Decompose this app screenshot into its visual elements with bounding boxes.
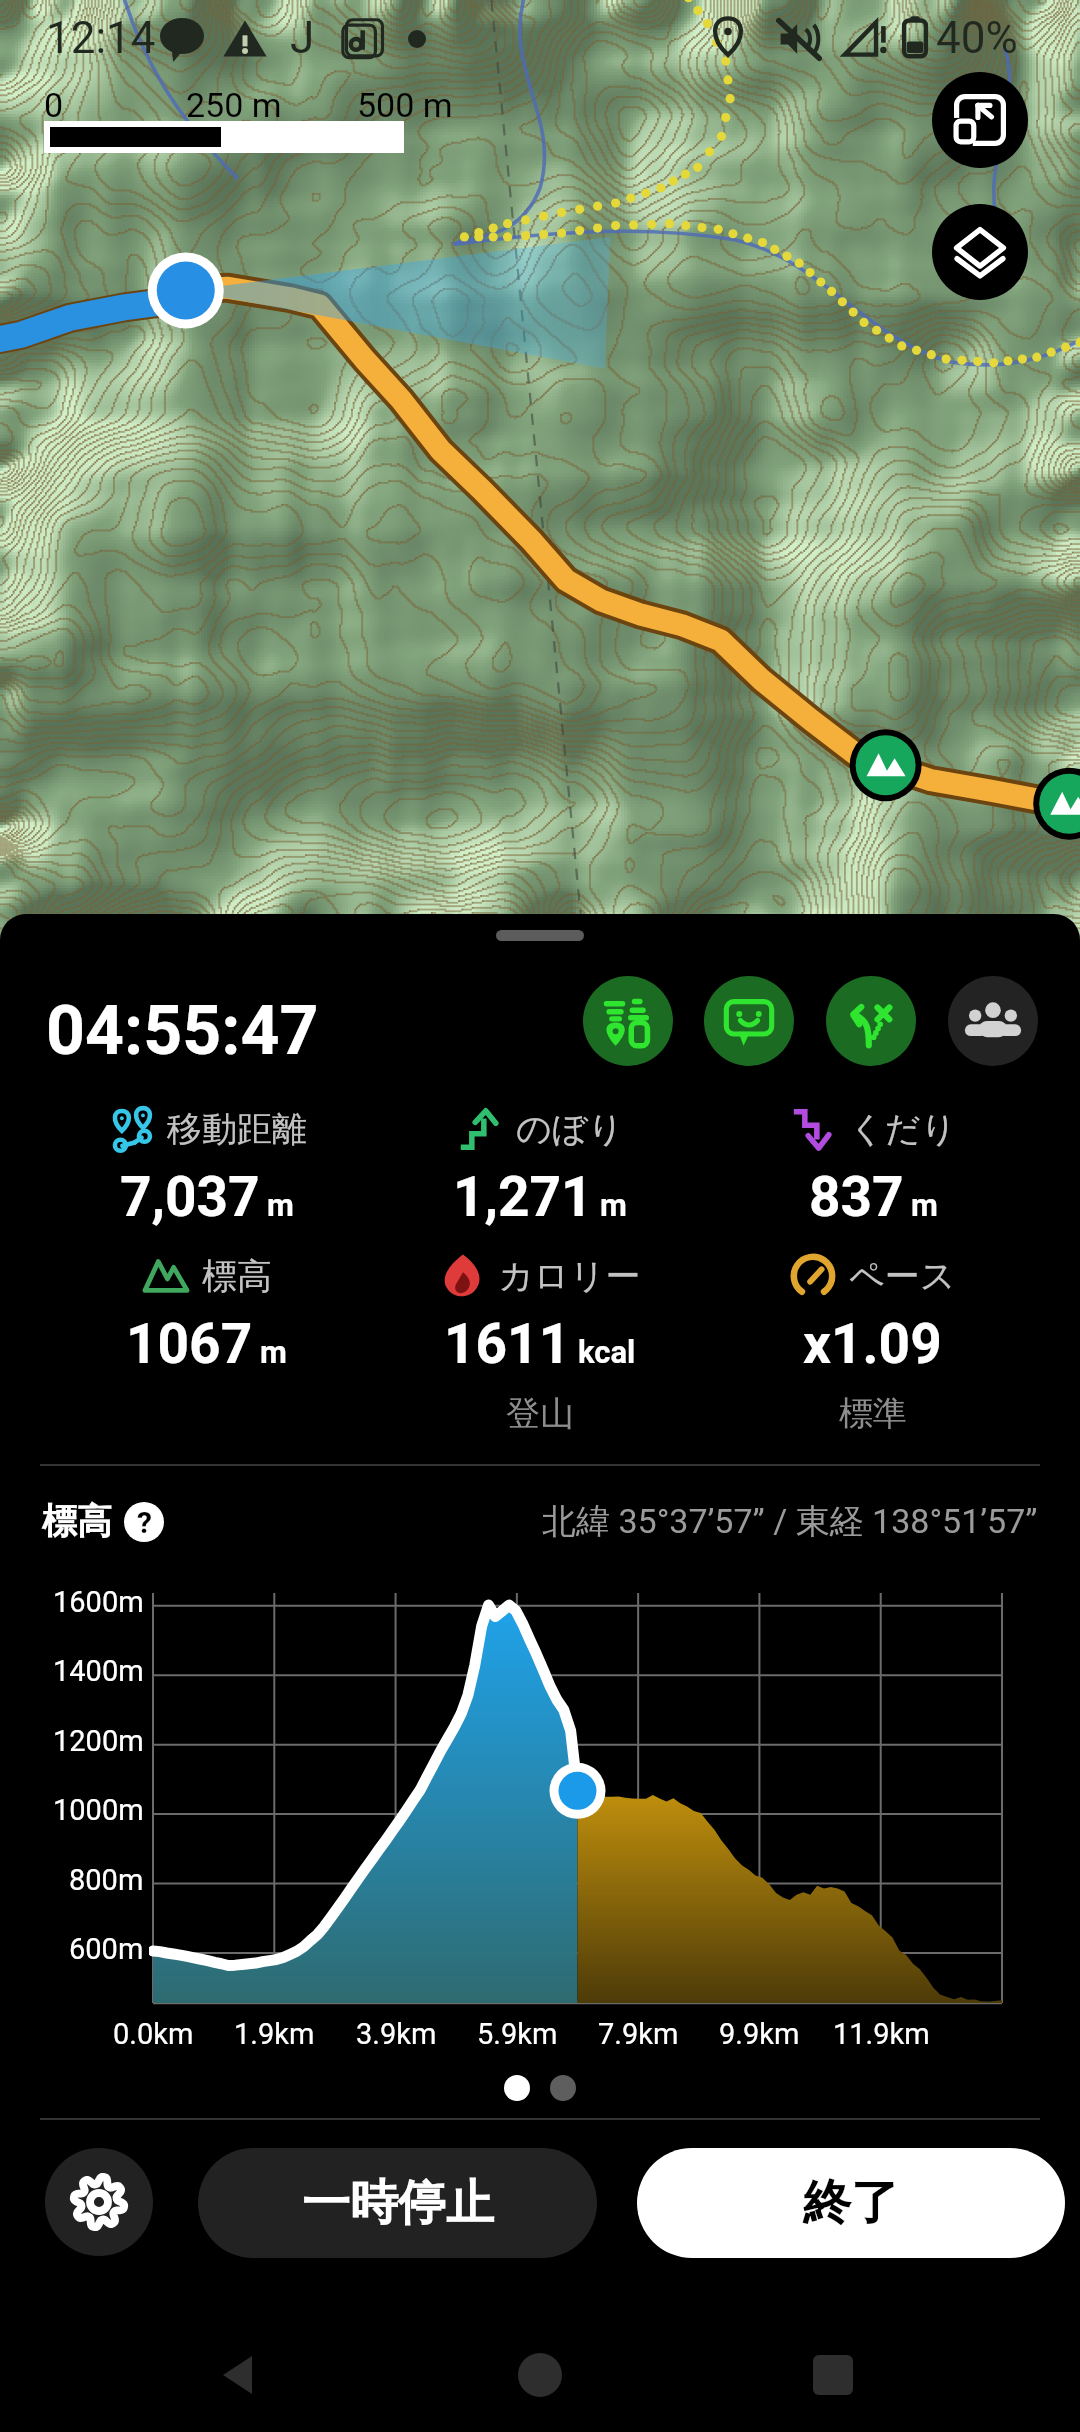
staticText: 標高 [202,1254,272,1298]
staticText: くだり [849,1107,957,1151]
staticText: 登山 [506,1392,574,1435]
button[interactable]: Back [195,2330,285,2420]
staticText: 北緯 35°37’57” / 東経 138°51’57” [542,1500,1038,1543]
staticText: 1400m [53,1654,144,1688]
staticText: 12:14 [46,12,156,64]
staticText: J [290,12,315,64]
button[interactable]: Home [495,2330,585,2420]
button[interactable]: Route [826,976,916,1066]
staticText: 9.9km [719,2017,800,2051]
staticText: 1,271 [453,1165,593,1229]
staticText: 一時停止 [302,2173,494,2233]
staticText: m [600,1187,627,1223]
staticText: m [260,1334,287,1370]
staticText: 5.9km [477,2017,558,2051]
staticText: 1.9km [234,2017,315,2051]
staticText: 600m [69,1932,144,1966]
staticText: 0.0km [113,2017,194,2051]
button[interactable]: Settings [45,2148,153,2256]
staticText: 1000m [53,1793,144,1827]
button[interactable]: Waypoints [583,976,673,1066]
staticText: x1.09 [803,1312,942,1376]
staticText: 40% [936,12,1018,64]
staticText: kcal [578,1334,636,1370]
staticText: m [267,1187,294,1223]
staticText: 1067 [126,1312,253,1376]
staticText: カロリー [498,1254,641,1298]
staticText: ペース [849,1254,956,1298]
button[interactable]: Members [948,976,1038,1066]
staticText: 終了 [803,2173,899,2233]
staticText: 移動距離 [167,1107,307,1151]
button[interactable]: Help [124,1502,164,1542]
staticText: 250 m [186,85,282,125]
staticText: 837 [809,1165,904,1229]
staticText: 1600m [53,1585,144,1619]
staticText: 04:55:47 [46,991,319,1071]
staticText: のぼり [516,1107,624,1151]
staticText: 800m [69,1863,144,1897]
staticText: m [911,1187,938,1223]
button[interactable]: Map layers [932,204,1028,300]
staticText: 1611 [444,1312,571,1376]
button[interactable]: 一時停止 [198,2148,597,2258]
staticText: 3.9km [356,2017,437,2051]
staticText: 7,037 [120,1165,260,1229]
staticText: 11.9km [833,2017,930,2051]
staticText: ? [137,1505,152,1540]
staticText: 7.9km [598,2017,679,2051]
staticText: 標高 [42,1499,112,1543]
staticText: 0 [44,85,64,125]
button[interactable]: Recent apps [788,2330,878,2420]
button[interactable]: Shrink map [932,72,1028,168]
staticText: 500 m [357,85,453,125]
staticText: 1200m [53,1724,144,1758]
button[interactable]: 終了 [637,2148,1065,2258]
staticText: 標準 [839,1392,907,1435]
button[interactable]: Post moment [704,976,794,1066]
